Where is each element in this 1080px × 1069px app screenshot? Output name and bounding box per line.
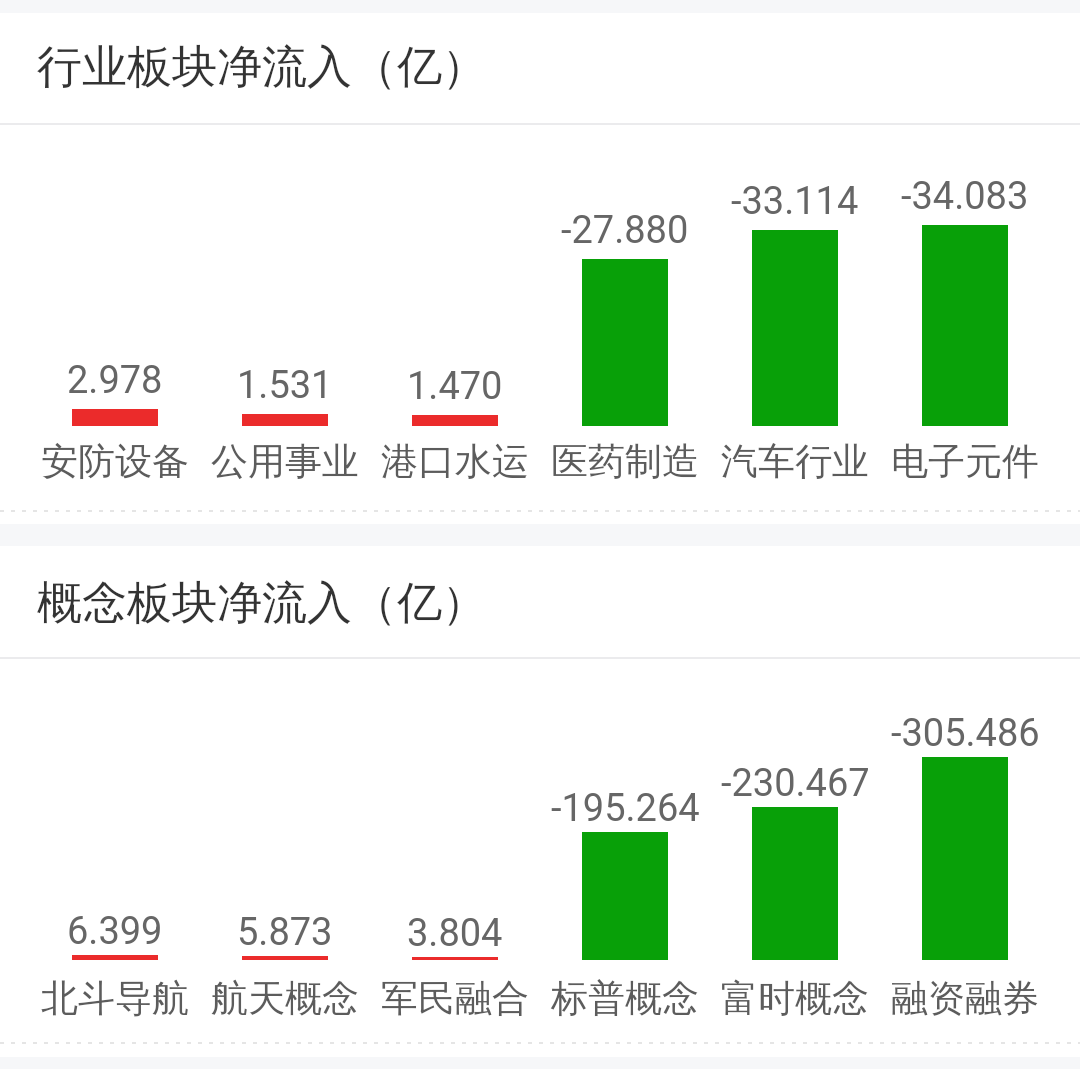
staticText: 行业板块净流入（亿） xyxy=(37,39,487,96)
staticText: 概念板块净流入（亿） xyxy=(37,575,487,632)
staticText: 标普概念 xyxy=(551,975,699,1022)
staticText: 富时概念 xyxy=(721,975,869,1022)
button[interactable]: 汽车行业 xyxy=(710,438,880,485)
button[interactable]: 军民融合 xyxy=(370,975,540,1022)
button[interactable]: 航天概念 xyxy=(200,975,370,1022)
staticText: -230.467 xyxy=(721,761,870,806)
staticText: 港口水运 xyxy=(381,438,529,485)
staticText: -27.880 xyxy=(561,208,689,253)
staticText: -34.083 xyxy=(901,174,1029,219)
button[interactable]: 医药制造 xyxy=(540,438,710,485)
staticText: 航天概念 xyxy=(211,975,359,1022)
staticText: 安防设备 xyxy=(41,438,189,485)
staticText: 汽车行业 xyxy=(721,438,869,485)
button[interactable]: 电子元件 xyxy=(880,438,1050,485)
staticText: 医药制造 xyxy=(551,438,699,485)
button[interactable]: 港口水运 xyxy=(370,438,540,485)
staticText: 1.531 xyxy=(237,363,333,408)
staticText: -305.486 xyxy=(891,711,1040,756)
staticText: 2.978 xyxy=(67,358,163,403)
button[interactable]: 富时概念 xyxy=(710,975,880,1022)
staticText: 3.804 xyxy=(407,911,503,956)
button[interactable]: 公用事业 xyxy=(200,438,370,485)
staticText: 融资融券 xyxy=(891,975,1039,1022)
staticText: 电子元件 xyxy=(891,438,1039,485)
staticText: 军民融合 xyxy=(381,975,529,1022)
staticText: -195.264 xyxy=(551,786,700,831)
button[interactable]: 融资融券 xyxy=(880,975,1050,1022)
staticText: 1.470 xyxy=(407,364,503,409)
staticText: -33.114 xyxy=(731,179,859,224)
staticText: 5.873 xyxy=(237,910,333,955)
button[interactable]: 北斗导航 xyxy=(30,975,200,1022)
staticText: 北斗导航 xyxy=(41,975,189,1022)
staticText: 6.399 xyxy=(67,909,163,954)
button[interactable]: 标普概念 xyxy=(540,975,710,1022)
button[interactable]: 安防设备 xyxy=(30,438,200,485)
staticText: 公用事业 xyxy=(211,438,359,485)
